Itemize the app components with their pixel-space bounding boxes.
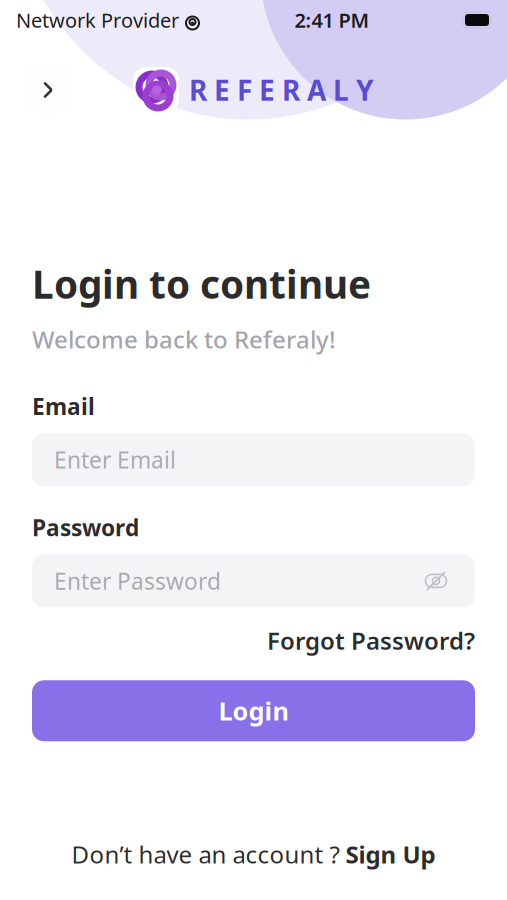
staticText: Enter Password	[54, 566, 221, 596]
button[interactable]: Show password	[419, 566, 453, 596]
staticText: Network Provider	[16, 7, 179, 33]
button[interactable]: Forgot Password?	[267, 624, 475, 656]
staticText: Enter Email	[54, 445, 176, 475]
staticText: Login to continue	[32, 258, 371, 309]
staticText: 2:41 PM	[294, 7, 369, 33]
staticText: R E F E R A L Y	[189, 71, 374, 109]
button[interactable]: Login	[32, 680, 475, 741]
button[interactable]: Don’t have an account ?	[32, 838, 475, 870]
staticText: Welcome back to Referaly!	[32, 323, 336, 355]
button[interactable]: Back	[25, 67, 71, 113]
staticText: Password	[32, 512, 139, 542]
staticText: Forgot Password?	[267, 624, 475, 656]
staticText: Login	[218, 694, 288, 728]
staticText: Don’t have an account ?	[71, 838, 345, 870]
staticText: Email	[32, 391, 95, 421]
staticText: Sign Up	[345, 838, 435, 870]
